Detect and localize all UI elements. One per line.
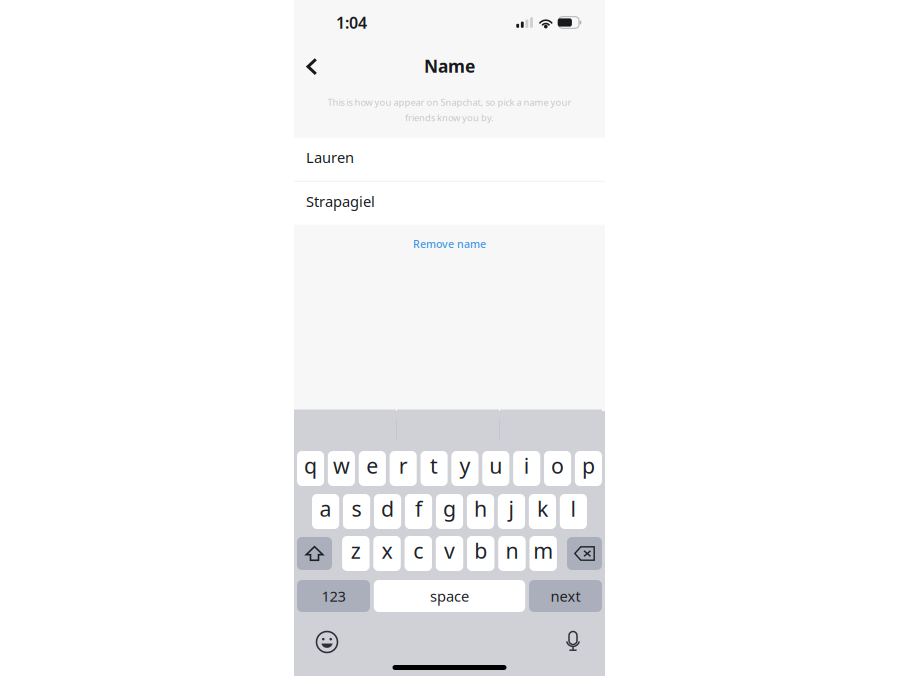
staticText: w: [333, 451, 350, 480]
button[interactable]: Remove name: [294, 225, 605, 263]
staticText: 123: [321, 586, 345, 606]
button[interactable]: f: [405, 494, 432, 529]
button[interactable]: z: [342, 536, 369, 571]
staticText: n: [505, 536, 518, 565]
staticText: space: [430, 586, 469, 606]
staticText: Lauren: [306, 147, 354, 167]
button[interactable]: Back: [297, 48, 326, 84]
staticText: b: [474, 536, 487, 565]
staticText: u: [489, 451, 502, 480]
staticText: 1:04: [336, 12, 367, 33]
button[interactable]: i: [513, 451, 540, 486]
button[interactable]: e: [359, 451, 386, 486]
button[interactable]: s: [343, 494, 370, 529]
button[interactable]: Lauren: [294, 138, 605, 181]
button[interactable]: Shift: [297, 537, 332, 570]
button[interactable]: q: [297, 451, 324, 486]
button[interactable]: next: [529, 580, 602, 612]
button[interactable]: c: [405, 536, 432, 571]
staticText: e: [366, 451, 378, 480]
staticText: friends know you by.: [405, 111, 494, 124]
staticText: Name: [424, 54, 475, 77]
button[interactable]: Delete: [567, 537, 602, 570]
staticText: i: [524, 451, 530, 480]
staticText: f: [415, 494, 422, 523]
button[interactable]: p: [575, 451, 602, 486]
button[interactable]: m: [529, 536, 557, 571]
staticText: g: [443, 494, 456, 523]
staticText: s: [352, 494, 362, 523]
button[interactable]: j: [498, 494, 525, 529]
staticText: d: [381, 494, 394, 523]
button[interactable]: o: [544, 451, 571, 486]
button[interactable]: a: [312, 494, 339, 529]
staticText: p: [582, 451, 595, 480]
staticText: x: [381, 536, 392, 565]
staticText: z: [351, 536, 361, 565]
staticText: next: [550, 586, 580, 606]
button[interactable]: n: [498, 536, 526, 571]
staticText: l: [570, 494, 576, 523]
staticText: r: [399, 451, 408, 480]
button[interactable]: d: [374, 494, 401, 529]
button[interactable]: g: [436, 494, 463, 529]
button[interactable]: h: [467, 494, 494, 529]
button[interactable]: x: [373, 536, 401, 571]
staticText: a: [320, 494, 332, 523]
button[interactable]: u: [482, 451, 509, 486]
staticText: t: [430, 451, 438, 480]
staticText: q: [304, 451, 317, 480]
staticText: y: [459, 451, 470, 480]
staticText: m: [533, 536, 553, 565]
staticText: Strapagiel: [306, 191, 375, 211]
staticText: j: [508, 494, 514, 523]
button[interactable]: b: [467, 536, 494, 571]
button[interactable]: t: [420, 451, 448, 486]
button[interactable]: y: [451, 451, 478, 486]
button[interactable]: space: [374, 580, 525, 612]
staticText: k: [537, 494, 548, 523]
button[interactable]: w: [328, 451, 355, 486]
staticText: v: [444, 536, 455, 565]
button[interactable]: r: [390, 451, 417, 486]
staticText: o: [551, 451, 564, 480]
button[interactable]: l: [560, 494, 587, 529]
staticText: Remove name: [413, 237, 486, 251]
button[interactable]: Strapagiel: [294, 182, 605, 225]
button[interactable]: Emoji keyboard: [316, 631, 338, 653]
button[interactable]: v: [436, 536, 463, 571]
staticText: This is how you appear on Snapchat, so p…: [327, 96, 571, 108]
button[interactable]: k: [529, 494, 556, 529]
button[interactable]: Dictate: [564, 631, 582, 653]
button[interactable]: 123: [297, 580, 370, 612]
staticText: c: [413, 536, 423, 565]
staticText: h: [474, 494, 487, 523]
